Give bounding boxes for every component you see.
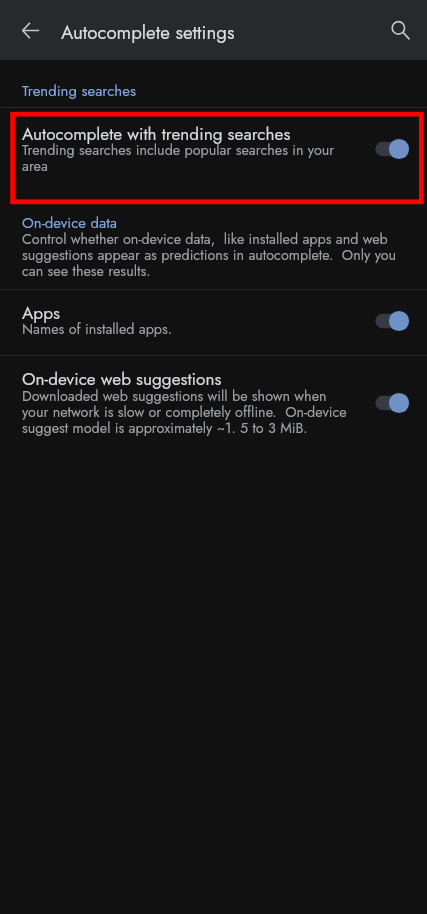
staticText: On-device data — [22, 212, 118, 234]
staticText: Trending searches include popular search… — [22, 143, 348, 175]
staticText: Downloaded web suggestions will be shown… — [22, 389, 354, 437]
staticText: Autocomplete settings — [61, 19, 235, 46]
button[interactable]: Search — [381, 11, 419, 49]
staticText: Control whether on-device data, like ins… — [22, 232, 400, 280]
button[interactable]: Navigate up — [12, 12, 48, 48]
button[interactable]: Toggle Autocomplete with trending search… — [369, 134, 415, 164]
staticText: Trending searches — [22, 80, 136, 102]
button[interactable]: On-device web suggestions — [0, 356, 427, 442]
button[interactable]: Autocomplete with trending searches — [0, 108, 427, 204]
button[interactable]: Toggle Apps — [369, 306, 415, 336]
button[interactable]: Trending searches — [0, 76, 427, 106]
staticText: Names of installed apps. — [22, 322, 344, 338]
staticText: Autocomplete with trending searches — [22, 122, 291, 147]
staticText: Apps — [22, 301, 60, 326]
button[interactable]: Apps — [0, 290, 427, 355]
button[interactable]: Toggle On-device web suggestions — [369, 388, 415, 418]
staticText: On-device web suggestions — [22, 367, 222, 392]
button[interactable]: On-device data — [0, 208, 427, 288]
